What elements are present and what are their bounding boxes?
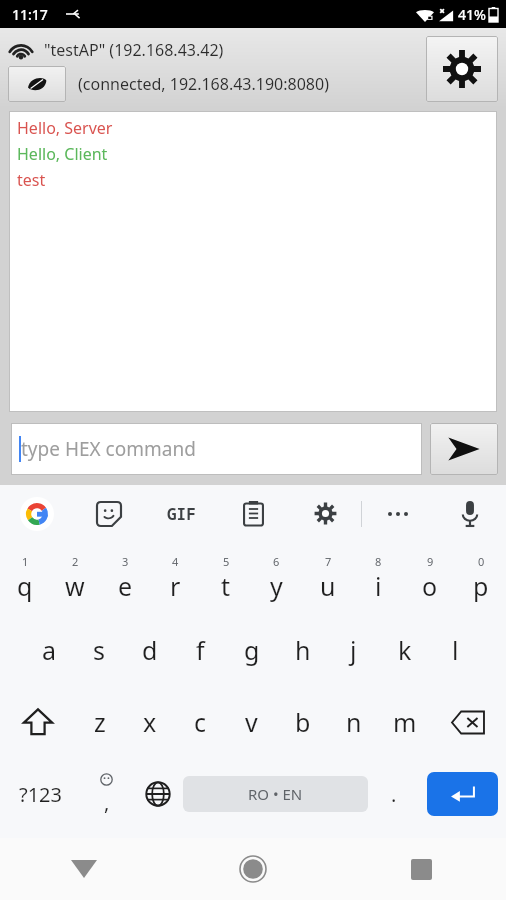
button[interactable]: Keyboard settings — [289, 485, 361, 542]
button[interactable]: Google — [0, 485, 73, 542]
button[interactable]: j — [328, 614, 379, 686]
staticText: k — [398, 633, 412, 667]
button[interactable]: Backspace — [430, 686, 506, 758]
staticText: w — [65, 569, 85, 603]
staticText: y — [270, 569, 283, 603]
button[interactable]: 5 — [200, 542, 251, 614]
button[interactable]: Enter — [427, 772, 498, 816]
button[interactable]: 0 — [455, 542, 506, 614]
button[interactable]: Send — [430, 423, 498, 475]
staticText: ?123 — [19, 781, 62, 808]
staticText: l — [452, 633, 459, 667]
staticText: n — [346, 705, 362, 739]
staticText: d — [142, 633, 158, 667]
staticText: r — [170, 569, 181, 603]
staticText: c — [194, 705, 207, 739]
button[interactable]: RO • EN — [183, 776, 368, 812]
staticText: RO • EN — [248, 784, 303, 804]
staticText: t — [221, 569, 231, 603]
staticText: 3 — [122, 554, 129, 569]
button[interactable]: h — [277, 614, 328, 686]
button[interactable]: 4 — [150, 542, 200, 614]
button[interactable]: 1 — [0, 542, 50, 614]
staticText: (connected, 192.168.43.190:8080) — [78, 73, 329, 95]
staticText: 6 — [273, 554, 280, 569]
staticText: m — [393, 705, 417, 739]
button[interactable]: Stickers — [73, 485, 145, 542]
button[interactable]: f — [175, 614, 226, 686]
staticText: g — [244, 633, 260, 667]
button[interactable]: d — [124, 614, 175, 686]
staticText: x — [143, 705, 157, 739]
button[interactable]: Change language — [132, 758, 183, 830]
staticText: o — [422, 569, 438, 603]
staticText: "testAP" (192.168.43.42) — [44, 39, 224, 61]
button[interactable]: m — [379, 686, 430, 758]
button[interactable]: 7 — [302, 542, 353, 614]
button[interactable]: Clipboard — [217, 485, 289, 542]
staticText: p — [473, 569, 489, 603]
button[interactable]: GIF — [145, 485, 217, 542]
staticText: . — [391, 781, 397, 808]
staticText: 8 — [375, 554, 382, 569]
staticText: 11:17 — [12, 5, 48, 24]
staticText: f — [196, 633, 205, 667]
staticText: h — [295, 633, 311, 667]
button[interactable]: ?123 — [0, 758, 81, 830]
button[interactable]: Toggle connection — [8, 66, 66, 102]
staticText: a — [42, 633, 57, 667]
button[interactable]: k — [379, 614, 430, 686]
staticText: , — [104, 789, 110, 816]
staticText: Hello, Client — [17, 143, 108, 165]
staticText: e — [118, 569, 133, 603]
button[interactable]: 6 — [251, 542, 302, 614]
staticText: i — [375, 569, 382, 603]
button[interactable]: a — [24, 614, 74, 686]
staticText: 4 — [172, 554, 179, 569]
staticText: 0 — [478, 554, 485, 569]
button[interactable]: Shift — [0, 686, 75, 758]
staticText: b — [295, 705, 311, 739]
button[interactable]: c — [175, 686, 226, 758]
staticText: type HEX command — [21, 436, 196, 462]
button[interactable]: Recent apps — [337, 838, 506, 900]
staticText: u — [320, 569, 336, 603]
button[interactable]: b — [277, 686, 328, 758]
button[interactable]: Settings — [426, 36, 498, 102]
staticText: 41% — [458, 5, 486, 24]
staticText: GIF — [167, 503, 196, 525]
button[interactable]: Hello, Server — [17, 117, 497, 412]
staticText: v — [245, 705, 258, 739]
staticText: Hello, Server — [17, 117, 113, 139]
staticText: 5 — [223, 554, 230, 569]
button[interactable]: 8 — [353, 542, 404, 614]
button[interactable]: 9 — [404, 542, 455, 614]
button[interactable]: Voice input — [434, 485, 506, 542]
button[interactable]: More options — [362, 485, 434, 542]
staticText: 7 — [325, 554, 332, 569]
button[interactable]: 2 — [50, 542, 100, 614]
button[interactable]: . — [368, 758, 419, 830]
button[interactable]: x — [125, 686, 175, 758]
button[interactable]: v — [226, 686, 277, 758]
button[interactable]: Back — [0, 838, 168, 900]
staticText: j — [350, 633, 357, 667]
button[interactable]: g — [226, 614, 277, 686]
button[interactable]: Home — [168, 838, 337, 900]
button[interactable]: Emoji and comma — [81, 758, 132, 830]
button[interactable]: l — [430, 614, 481, 686]
button[interactable]: s — [74, 614, 124, 686]
staticText: 1 — [22, 554, 29, 569]
staticText: 2 — [72, 554, 79, 569]
staticText: z — [94, 705, 106, 739]
staticText: test — [17, 169, 46, 191]
button[interactable]: n — [328, 686, 379, 758]
staticText: 9 — [427, 554, 434, 569]
staticText: q — [17, 569, 33, 603]
button[interactable]: 3 — [100, 542, 150, 614]
staticText: s — [93, 633, 105, 667]
button[interactable]: type HEX command — [19, 423, 422, 475]
button[interactable]: z — [75, 686, 125, 758]
